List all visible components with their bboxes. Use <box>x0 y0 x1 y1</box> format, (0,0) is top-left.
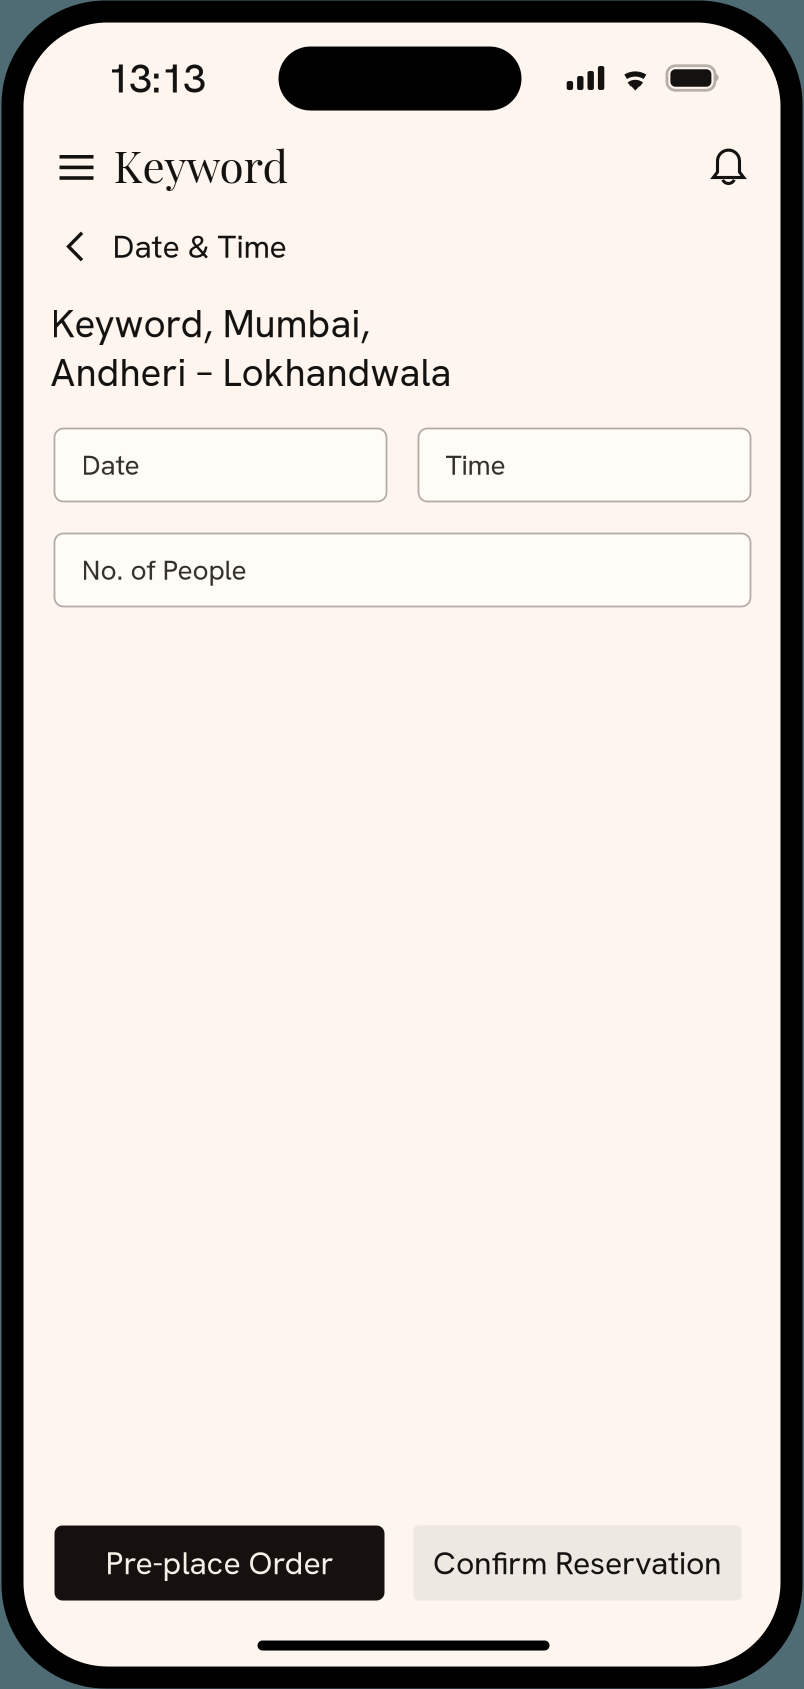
staticText: Keyword <box>113 135 288 194</box>
button[interactable]: Time <box>418 428 750 501</box>
button[interactable]: No. of People <box>54 533 750 606</box>
button[interactable]: Date & Time <box>46 218 302 274</box>
staticText: 13:13 <box>107 52 205 104</box>
button[interactable]: Date <box>54 428 386 501</box>
staticText: Pre-place Order <box>105 1542 333 1584</box>
staticText: Date <box>81 447 139 483</box>
button[interactable]: Pre-place Order <box>54 1525 384 1600</box>
staticText: No. of People <box>81 552 246 588</box>
staticText: Time <box>445 447 505 483</box>
staticText: Keyword, Mumbai, Andheri – Lokhandwala <box>50 298 451 398</box>
staticText: Date & Time <box>112 226 286 267</box>
staticText: Confirm Reservation <box>433 1542 722 1584</box>
button[interactable]: Confirm Reservation <box>413 1525 741 1600</box>
button[interactable]: Notifications <box>700 138 756 194</box>
button[interactable]: Menu <box>48 139 104 195</box>
